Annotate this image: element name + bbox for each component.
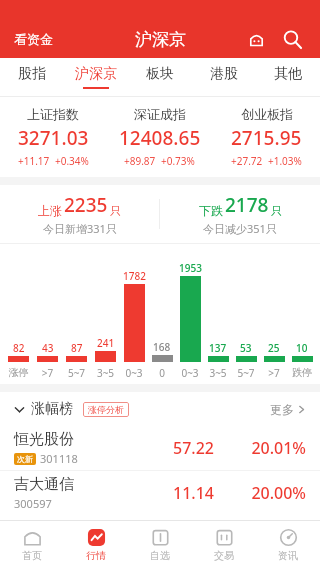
staticText: 沪深京 bbox=[75, 65, 117, 83]
staticText: >7 bbox=[33, 366, 62, 380]
button[interactable]: 板块 bbox=[128, 58, 192, 96]
button[interactable]: 沪深京 bbox=[64, 58, 128, 96]
button[interactable]: 上涨 bbox=[0, 192, 159, 236]
button[interactable]: 首页 bbox=[0, 521, 64, 569]
button[interactable]: 行情 bbox=[64, 521, 128, 569]
button[interactable]: 恒光股份 bbox=[0, 426, 320, 470]
button[interactable]: 看资金 bbox=[0, 25, 59, 53]
staticText: 创业板指 bbox=[241, 106, 293, 122]
button[interactable]: 股指 bbox=[0, 58, 64, 96]
staticText: 2715.95 bbox=[231, 125, 302, 151]
staticText: 20.00% bbox=[214, 482, 306, 504]
staticText: 1953 bbox=[179, 261, 202, 275]
staticText: 241 bbox=[97, 336, 115, 350]
button[interactable]: 吉大通信 bbox=[0, 471, 320, 515]
staticText: 2235 bbox=[64, 192, 108, 218]
staticText: 股指 bbox=[18, 65, 46, 83]
staticText: +11.17 bbox=[18, 154, 50, 168]
staticText: 20.01% bbox=[214, 437, 306, 459]
staticText: 300597 bbox=[14, 496, 52, 511]
staticText: 87 bbox=[71, 341, 83, 355]
staticText: +89.87 bbox=[124, 154, 156, 168]
staticText: 53 bbox=[240, 341, 252, 355]
staticText: 更多 bbox=[270, 402, 294, 417]
staticText: 301118 bbox=[40, 451, 78, 466]
button[interactable]: 交易 bbox=[192, 521, 256, 569]
staticText: 10 bbox=[296, 341, 308, 355]
staticText: 自选 bbox=[150, 549, 170, 562]
staticText: 交易 bbox=[214, 549, 234, 562]
staticText: 0 bbox=[148, 366, 176, 380]
staticText: 5~7 bbox=[232, 366, 260, 380]
staticText: 板块 bbox=[146, 65, 174, 83]
staticText: 恒光股份 bbox=[14, 430, 74, 449]
staticText: 今日减少351只 bbox=[203, 221, 277, 236]
staticText: 今日新增331只 bbox=[43, 221, 117, 236]
staticText: 3~5 bbox=[91, 366, 120, 380]
button[interactable]: Search bbox=[276, 23, 308, 55]
staticText: +1.03% bbox=[268, 154, 302, 168]
staticText: 沪深京 bbox=[135, 29, 186, 50]
button[interactable]: 创业板指 bbox=[213, 106, 320, 168]
staticText: 43 bbox=[42, 341, 54, 355]
staticText: +0.34% bbox=[55, 154, 89, 168]
staticText: 其他 bbox=[274, 65, 302, 83]
staticText: 0~3 bbox=[120, 366, 148, 380]
button[interactable]: 自选 bbox=[128, 521, 192, 569]
button[interactable]: 上证指数 bbox=[0, 106, 106, 168]
staticText: 首页 bbox=[22, 549, 42, 562]
staticText: 次新 bbox=[17, 454, 33, 464]
staticText: 下跌 bbox=[199, 203, 223, 218]
staticText: 看资金 bbox=[14, 31, 53, 47]
staticText: 涨停 bbox=[4, 366, 33, 379]
staticText: 吉大通信 bbox=[14, 475, 74, 494]
staticText: 深证成指 bbox=[134, 106, 186, 122]
staticText: 只 bbox=[110, 204, 121, 218]
staticText: 1782 bbox=[123, 269, 146, 283]
staticText: 137 bbox=[209, 341, 227, 355]
staticText: 12408.65 bbox=[119, 125, 201, 151]
staticText: 资讯 bbox=[278, 549, 298, 562]
button[interactable]: 深证成指 bbox=[106, 106, 213, 168]
staticText: +27.72 bbox=[231, 154, 263, 168]
button[interactable]: 其他 bbox=[256, 58, 320, 96]
staticText: +0.73% bbox=[161, 154, 195, 168]
staticText: 11.14 bbox=[127, 482, 214, 504]
button[interactable]: 下跌 bbox=[160, 192, 320, 236]
staticText: 168 bbox=[153, 340, 171, 354]
button[interactable]: 资讯 bbox=[256, 521, 320, 569]
staticText: 2178 bbox=[225, 192, 269, 218]
staticText: 上涨 bbox=[38, 203, 62, 218]
staticText: 5~7 bbox=[62, 366, 91, 380]
staticText: 57.22 bbox=[127, 437, 214, 459]
button[interactable]: AI assistant bbox=[242, 25, 270, 53]
staticText: 3~5 bbox=[204, 366, 232, 380]
staticText: 港股 bbox=[210, 65, 238, 83]
staticText: 涨幅榜 bbox=[31, 400, 73, 418]
staticText: 25 bbox=[268, 341, 280, 355]
staticText: 上证指数 bbox=[27, 106, 79, 122]
staticText: 3271.03 bbox=[18, 125, 89, 151]
button[interactable]: 涨幅榜 bbox=[14, 400, 73, 418]
staticText: 跌停 bbox=[288, 366, 316, 379]
staticText: 82 bbox=[13, 341, 25, 355]
staticText: 只 bbox=[271, 204, 282, 218]
staticText: 0~3 bbox=[176, 366, 204, 380]
button[interactable]: 涨停分析 bbox=[83, 402, 129, 417]
staticText: 涨停分析 bbox=[88, 404, 124, 415]
button[interactable]: 更多 bbox=[270, 402, 306, 417]
button[interactable]: 港股 bbox=[192, 58, 256, 96]
staticText: >7 bbox=[260, 366, 288, 380]
staticText: 行情 bbox=[86, 549, 106, 562]
